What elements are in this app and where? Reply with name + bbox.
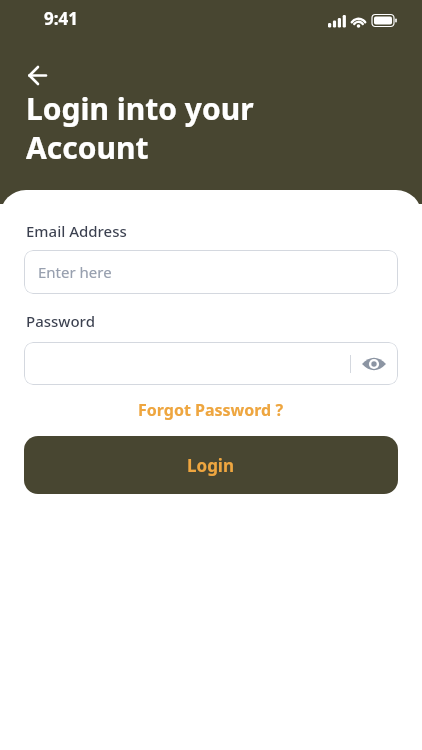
staticText: Email Address bbox=[26, 221, 127, 241]
staticText: Login bbox=[187, 454, 235, 477]
button[interactable]: Enter here bbox=[24, 250, 398, 294]
staticText: Login into your Account bbox=[26, 88, 254, 167]
staticText: 9:41 bbox=[44, 7, 78, 30]
staticText: Password bbox=[26, 311, 95, 331]
staticText: Forgot Password ? bbox=[138, 399, 284, 421]
button[interactable] bbox=[24, 342, 398, 385]
button[interactable]: Forgot Password ? bbox=[138, 399, 284, 421]
button[interactable] bbox=[16, 55, 58, 95]
staticText: Enter here bbox=[38, 262, 112, 282]
button[interactable]: Login bbox=[24, 436, 398, 494]
